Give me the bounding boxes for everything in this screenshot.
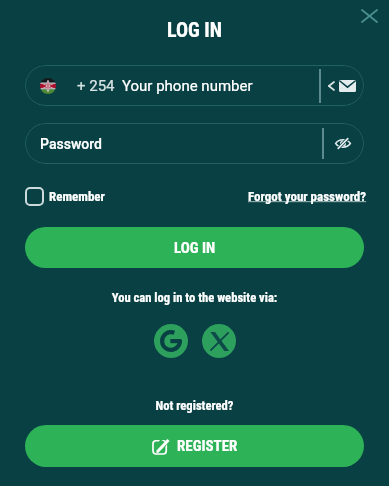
- button[interactable]: REGISTER: [25, 425, 364, 467]
- staticText: Not registered?: [0, 398, 389, 413]
- button[interactable]: Close: [355, 1, 384, 30]
- staticText: You can log in to the website via:: [0, 290, 389, 305]
- staticText: LOG IN: [174, 239, 216, 257]
- button[interactable]: + 254: [25, 65, 364, 106]
- button[interactable]: Forgot your password?: [248, 189, 367, 204]
- button[interactable]: Password: [25, 123, 364, 164]
- staticText: + 254: [77, 77, 115, 95]
- staticText: Your phone number: [122, 77, 253, 95]
- button[interactable]: Log in with X: [202, 324, 236, 358]
- button[interactable]: Log in with Google: [154, 324, 188, 358]
- button[interactable]: LOG IN: [25, 227, 364, 268]
- staticText: LOG IN: [0, 18, 389, 41]
- staticText: Remember: [49, 189, 105, 204]
- staticText: Password: [40, 136, 103, 152]
- button[interactable]: Remember: [25, 187, 105, 206]
- staticText: REGISTER: [177, 437, 238, 455]
